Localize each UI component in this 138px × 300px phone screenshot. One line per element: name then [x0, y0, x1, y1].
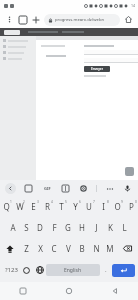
- button[interactable]: Emoji: [20, 262, 33, 278]
- button[interactable]: E: [26, 196, 40, 217]
- button[interactable]: [84, 50, 138, 55]
- button[interactable]: More: [104, 183, 115, 194]
- button[interactable]: N: [89, 238, 103, 259]
- button[interactable]: Q: [0, 196, 13, 217]
- button[interactable]: I: [96, 196, 110, 217]
- staticText: S: [24, 222, 29, 233]
- staticText: A: [10, 222, 16, 233]
- staticText: 8: [107, 200, 109, 204]
- staticText: W: [16, 201, 24, 212]
- staticText: 0: [135, 200, 137, 204]
- button[interactable]: Backspace: [117, 238, 138, 259]
- button[interactable]: Voice input: [122, 183, 133, 194]
- staticText: K: [108, 222, 113, 233]
- button[interactable]: Envoyer: [84, 66, 110, 72]
- button[interactable]: X: [33, 238, 47, 259]
- staticText: 4: [51, 200, 53, 204]
- button[interactable]: [3, 39, 36, 42]
- staticText: X: [38, 243, 43, 254]
- button[interactable]: Chat: [125, 167, 134, 176]
- staticText: 9: [121, 200, 123, 204]
- button[interactable]: U: [82, 196, 96, 217]
- staticText: J: [95, 222, 98, 233]
- button[interactable]: More options: [3, 13, 16, 26]
- button[interactable]: O: [110, 196, 124, 217]
- staticText: 5: [65, 200, 67, 204]
- button[interactable]: W: [13, 196, 26, 217]
- button[interactable]: T: [54, 196, 68, 217]
- button[interactable]: [3, 45, 36, 48]
- button[interactable]: P: [124, 196, 138, 217]
- staticText: E: [31, 201, 36, 212]
- staticText: GIF: [44, 186, 51, 191]
- button[interactable]: Change language: [33, 262, 46, 278]
- staticText: 6: [79, 200, 81, 204]
- staticText: Envoyer: [91, 67, 103, 71]
- staticText: M: [106, 243, 114, 254]
- button[interactable]: Home: [122, 13, 135, 26]
- staticText: B: [79, 243, 85, 254]
- button[interactable]: Stickers: [60, 183, 71, 194]
- button[interactable]: C: [47, 238, 61, 259]
- button[interactable]: [3, 51, 36, 54]
- button[interactable]: L: [117, 217, 131, 238]
- button[interactable]: V: [61, 238, 75, 259]
- button[interactable]: ?123: [3, 262, 20, 278]
- button[interactable]: progress.mearx.dz/webn: [44, 14, 120, 26]
- button[interactable]: Settings: [78, 183, 89, 194]
- button[interactable]: [4, 30, 20, 35]
- staticText: R: [45, 201, 50, 212]
- button[interactable]: Close toolbar: [5, 183, 16, 194]
- button[interactable]: F: [47, 217, 61, 238]
- button[interactable]: Enter: [112, 264, 135, 277]
- button[interactable]: Y: [68, 196, 82, 217]
- button[interactable]: M: [103, 238, 117, 259]
- staticText: F: [52, 222, 57, 233]
- staticText: O: [114, 201, 121, 212]
- button[interactable]: B: [75, 238, 89, 259]
- staticText: N: [93, 243, 100, 254]
- staticText: D: [37, 222, 43, 233]
- staticText: .: [105, 266, 107, 274]
- staticText: C: [51, 243, 57, 254]
- button[interactable]: S: [19, 217, 33, 238]
- button[interactable]: Back: [92, 282, 138, 300]
- staticText: Z: [24, 243, 29, 254]
- staticText: 7: [93, 200, 95, 204]
- button[interactable]: .: [100, 262, 112, 278]
- staticText: I: [102, 201, 105, 212]
- staticText: progress.mearx.dz/webn: [55, 17, 105, 23]
- button[interactable]: H: [75, 217, 89, 238]
- button[interactable]: Shift: [0, 238, 20, 259]
- staticText: P: [129, 201, 134, 212]
- staticText: 1: [10, 200, 12, 204]
- button[interactable]: GIF: [41, 182, 53, 194]
- staticText: English: [64, 267, 82, 274]
- button[interactable]: G: [61, 217, 75, 238]
- staticText: 3: [37, 200, 39, 204]
- staticText: 2: [23, 200, 25, 204]
- button[interactable]: Z: [20, 238, 33, 259]
- button[interactable]: Clipboard: [23, 183, 34, 194]
- staticText: G: [65, 222, 71, 233]
- button[interactable]: R: [40, 196, 54, 217]
- staticText: Q: [3, 201, 10, 212]
- staticText: T: [59, 201, 64, 212]
- button[interactable]: Home: [46, 282, 92, 300]
- button[interactable]: J: [89, 217, 103, 238]
- button[interactable]: Recents: [0, 282, 46, 300]
- button[interactable]: New tab: [29, 13, 42, 26]
- button[interactable]: [84, 58, 138, 63]
- button[interactable]: K: [103, 217, 117, 238]
- button[interactable]: D: [33, 217, 47, 238]
- staticText: V: [66, 243, 71, 254]
- button[interactable]: [3, 57, 36, 60]
- button[interactable]: A: [6, 217, 19, 238]
- staticText: ?123: [5, 266, 18, 274]
- button[interactable]: Tab switcher: [16, 13, 29, 26]
- staticText: Y: [73, 201, 78, 212]
- button[interactable]: English: [46, 264, 100, 276]
- staticText: U: [86, 201, 92, 212]
- staticText: 14: [131, 3, 136, 8]
- staticText: L: [122, 222, 127, 233]
